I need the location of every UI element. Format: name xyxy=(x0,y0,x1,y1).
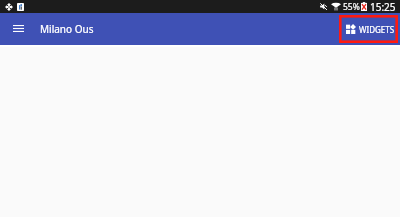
staticText: Milano Ous xyxy=(40,22,94,36)
staticText: WIDGETS xyxy=(359,24,395,35)
button[interactable]: Open navigation drawer xyxy=(5,13,31,43)
button[interactable]: WIDGETS xyxy=(339,15,398,43)
staticText: 15:25 xyxy=(370,0,396,13)
staticText: 55% xyxy=(343,1,360,13)
